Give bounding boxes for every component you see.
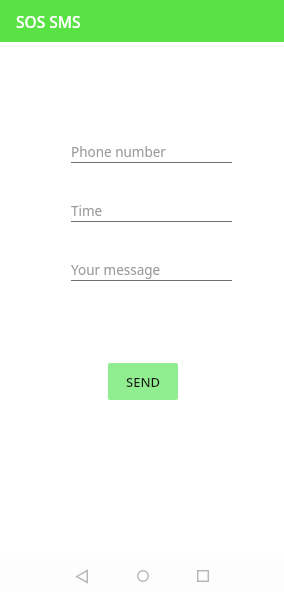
staticText: Phone number xyxy=(71,143,166,161)
button[interactable]: Recent apps xyxy=(187,560,219,592)
button[interactable]: Your message xyxy=(71,261,232,281)
button[interactable]: Time xyxy=(71,202,232,222)
staticText: SEND xyxy=(126,373,160,391)
staticText: Time xyxy=(71,202,103,220)
button[interactable]: Home xyxy=(127,560,159,592)
staticText: SOS SMS xyxy=(16,11,81,32)
button[interactable]: Back xyxy=(66,560,98,592)
staticText: Your message xyxy=(71,261,161,279)
button[interactable]: SEND xyxy=(108,363,178,400)
button[interactable]: Phone number xyxy=(71,143,232,163)
